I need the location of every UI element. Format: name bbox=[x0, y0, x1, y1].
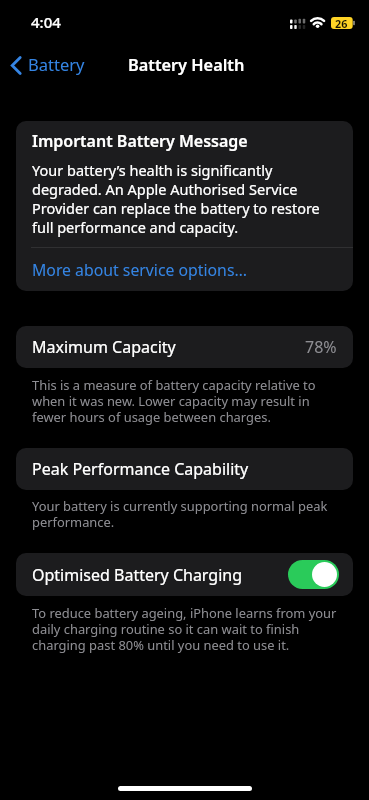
staticText: Battery bbox=[28, 53, 85, 75]
button[interactable]: Maximum Capacity bbox=[16, 326, 353, 368]
staticText: Your battery is currently supporting nor… bbox=[32, 498, 343, 530]
staticText: Battery Health bbox=[128, 54, 245, 76]
staticText: To reduce battery ageing, iPhone learns … bbox=[32, 605, 343, 653]
staticText: Peak Performance Capability bbox=[32, 458, 249, 480]
staticText: More about service options… bbox=[32, 259, 247, 281]
staticText: 78% bbox=[305, 336, 337, 358]
staticText: Optimised Battery Charging bbox=[32, 564, 243, 586]
staticText: Maximum Capacity bbox=[32, 336, 176, 358]
button[interactable]: Battery bbox=[6, 49, 86, 79]
button[interactable]: Optimised Battery Charging, on bbox=[288, 560, 339, 589]
button[interactable]: More about service options… bbox=[16, 248, 353, 291]
staticText: Important Battery Message bbox=[32, 131, 248, 151]
staticText: 26 bbox=[335, 16, 348, 28]
staticText: Your battery’s health is significantly d… bbox=[32, 161, 339, 237]
staticText: 4:04 bbox=[31, 12, 61, 32]
staticText: This is a measure of battery capacity re… bbox=[32, 377, 343, 425]
button[interactable]: Peak Performance Capability bbox=[16, 448, 353, 490]
